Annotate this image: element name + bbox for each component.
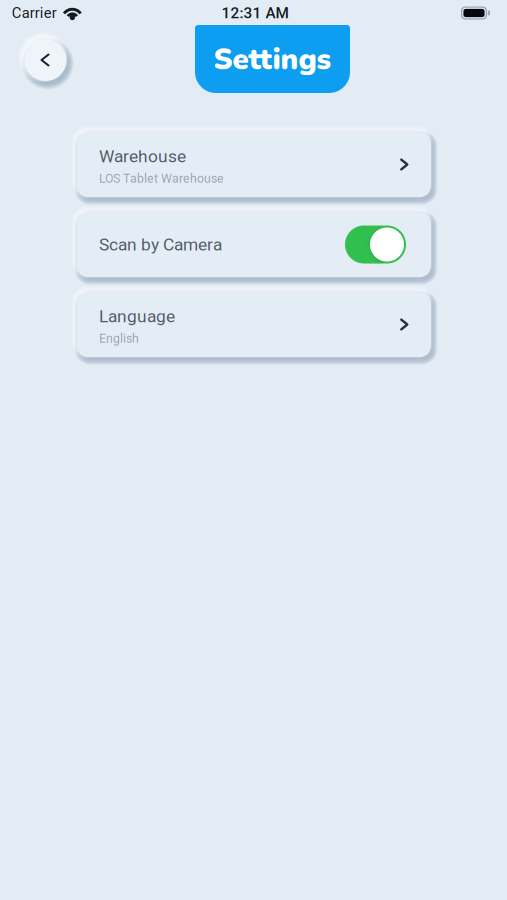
button[interactable]: Warehouse [68, 123, 440, 206]
staticText: LOS Tablet Warehouse [99, 171, 224, 186]
staticText: Warehouse [99, 146, 186, 166]
button[interactable]: Back [15, 30, 75, 90]
staticText: Carrier [12, 4, 57, 22]
staticText: Language [99, 306, 175, 326]
staticText: Scan by Camera [99, 234, 222, 255]
button[interactable]: Language [68, 283, 440, 366]
button[interactable]: Scan by Camera [68, 203, 440, 286]
staticText: Settings [213, 39, 331, 79]
staticText: 12:31 AM [221, 4, 288, 22]
staticText: English [99, 331, 139, 346]
